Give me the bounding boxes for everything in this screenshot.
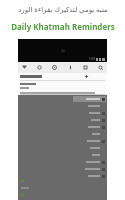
button[interactable]: Toolbar action 3: [67, 64, 74, 71]
button[interactable]: [52, 111, 106, 115]
staticText: Daily Khatmah Reminders: [11, 21, 115, 32]
button[interactable]: [52, 118, 106, 122]
button[interactable]: Toolbar action 0: [21, 64, 28, 71]
button[interactable]: Toolbar action 2: [51, 64, 58, 71]
button[interactable]: Toolbar action 5: [97, 64, 104, 71]
button[interactable]: [52, 146, 106, 150]
button[interactable]: [73, 96, 106, 102]
button[interactable]: Toolbar action 1: [36, 64, 43, 71]
button[interactable]: [52, 125, 106, 129]
button[interactable]: [52, 167, 106, 171]
staticText: 10:9: [89, 57, 95, 61]
staticText: منبه يومي لتذكيرك بقراءة الورد: [18, 5, 108, 15]
button[interactable]: [52, 174, 106, 178]
button[interactable]: [52, 153, 106, 157]
other: Add: [84, 74, 89, 79]
button[interactable]: [52, 160, 106, 164]
button[interactable]: Toolbar action 4: [82, 64, 89, 71]
button[interactable]: [52, 104, 106, 108]
button[interactable]: [52, 132, 106, 136]
button[interactable]: [52, 139, 106, 143]
